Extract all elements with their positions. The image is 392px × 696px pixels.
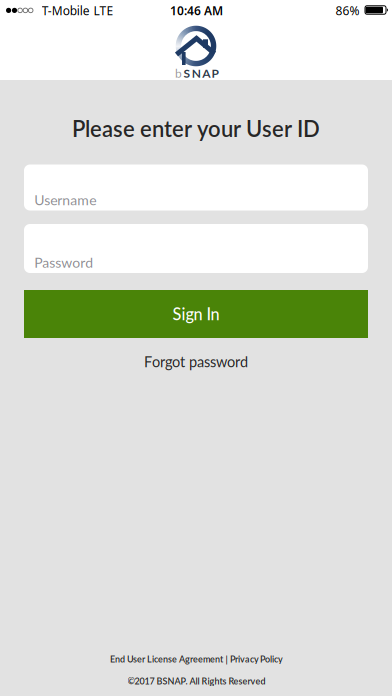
staticText: Sign In [172, 304, 219, 324]
staticText: 10:46 AM [170, 2, 223, 18]
staticText: T-Mobile [42, 2, 90, 18]
staticText: Privacy Policy [230, 654, 283, 664]
staticText: LTE [94, 2, 114, 18]
button[interactable]: Sign In [24, 290, 368, 338]
staticText: Username [34, 191, 96, 208]
button[interactable]: Privacy Policy [230, 654, 283, 664]
staticText: P [212, 66, 219, 80]
staticText: 86% [335, 2, 359, 18]
button[interactable]: Forgot password [144, 353, 248, 370]
staticText: Password [34, 254, 93, 271]
staticText: Please enter your User ID [72, 115, 320, 142]
staticText: b [175, 66, 182, 80]
button[interactable]: Password [24, 224, 368, 273]
staticText: S [183, 66, 190, 80]
button[interactable]: Username [24, 164, 368, 210]
staticText: A [202, 66, 210, 80]
staticText: | [225, 654, 227, 664]
button[interactable]: End User License Agreement [110, 654, 223, 664]
staticText: Forgot password [144, 353, 248, 370]
staticText: N [192, 66, 201, 80]
staticText: ©2017 BSNAP. All Rights Reserved [127, 676, 265, 686]
staticText: End User License Agreement [110, 654, 223, 664]
